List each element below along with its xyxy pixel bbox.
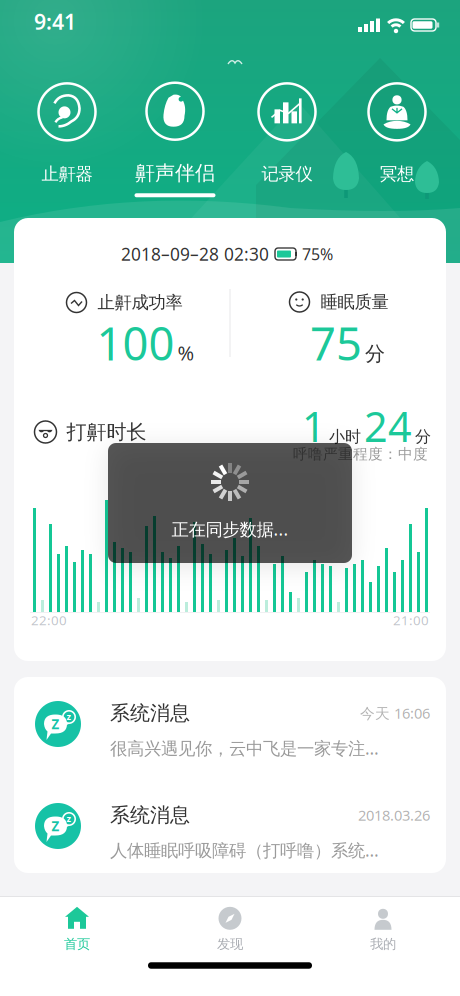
staticText: z xyxy=(66,812,71,825)
staticText: 21:00 xyxy=(393,611,429,629)
staticText: 正在同步数据... xyxy=(171,517,288,540)
staticText: 睡眠质量 xyxy=(320,291,388,313)
staticText: 首页 xyxy=(64,936,90,952)
staticText: 冥想 xyxy=(380,163,414,185)
button[interactable]: 首页 xyxy=(17,903,137,955)
staticText: 止鼾成功率 xyxy=(97,292,182,313)
staticText: 打鼾时长 xyxy=(66,420,146,444)
staticText: 今天 16:06 xyxy=(360,703,430,723)
staticText: 鼾声伴侣 xyxy=(135,161,215,185)
button[interactable]: 鼾声伴侣 xyxy=(121,83,229,199)
staticText: 2018–09–28 02:30 xyxy=(121,242,269,265)
staticText: 我的 xyxy=(370,936,396,952)
staticText: 很高兴遇见你，云中飞是一家专注… xyxy=(110,736,379,759)
staticText: 系统消息 xyxy=(110,701,190,725)
staticText: 记录仪 xyxy=(261,163,312,185)
staticText: 系统消息 xyxy=(110,803,190,827)
staticText: Z xyxy=(51,817,59,835)
button[interactable]: 记录仪 xyxy=(233,83,341,199)
staticText: 止鼾器 xyxy=(41,163,92,185)
staticText: 24 xyxy=(364,399,412,453)
button[interactable]: 发现 xyxy=(170,903,290,955)
staticText: 分 xyxy=(365,342,385,366)
button[interactable]: 冥想 xyxy=(343,83,451,199)
button[interactable]: 止鼾器 xyxy=(13,83,121,199)
button[interactable]: Z xyxy=(14,778,446,874)
staticText: 2018.03.26 xyxy=(358,805,430,825)
staticText: 9:41 xyxy=(34,7,76,36)
staticText: 100 xyxy=(96,313,174,373)
staticText: 发现 xyxy=(217,936,243,952)
staticText: 75% xyxy=(302,243,333,265)
button[interactable]: 我的 xyxy=(323,903,443,955)
staticText: % xyxy=(177,339,194,366)
staticText: 75 xyxy=(310,313,362,373)
button[interactable]: Z xyxy=(14,676,446,772)
staticText: Z xyxy=(51,715,59,733)
staticText: 呼噜严重程度：中度 xyxy=(293,445,428,463)
staticText: 分 xyxy=(415,427,431,447)
staticText: 1 xyxy=(302,399,326,453)
staticText: z xyxy=(66,710,71,723)
staticText: 22:00 xyxy=(31,611,67,629)
staticText: 人体睡眠呼吸障碍（打呼噜）系统… xyxy=(110,838,379,861)
staticText: 小时 xyxy=(329,427,361,447)
